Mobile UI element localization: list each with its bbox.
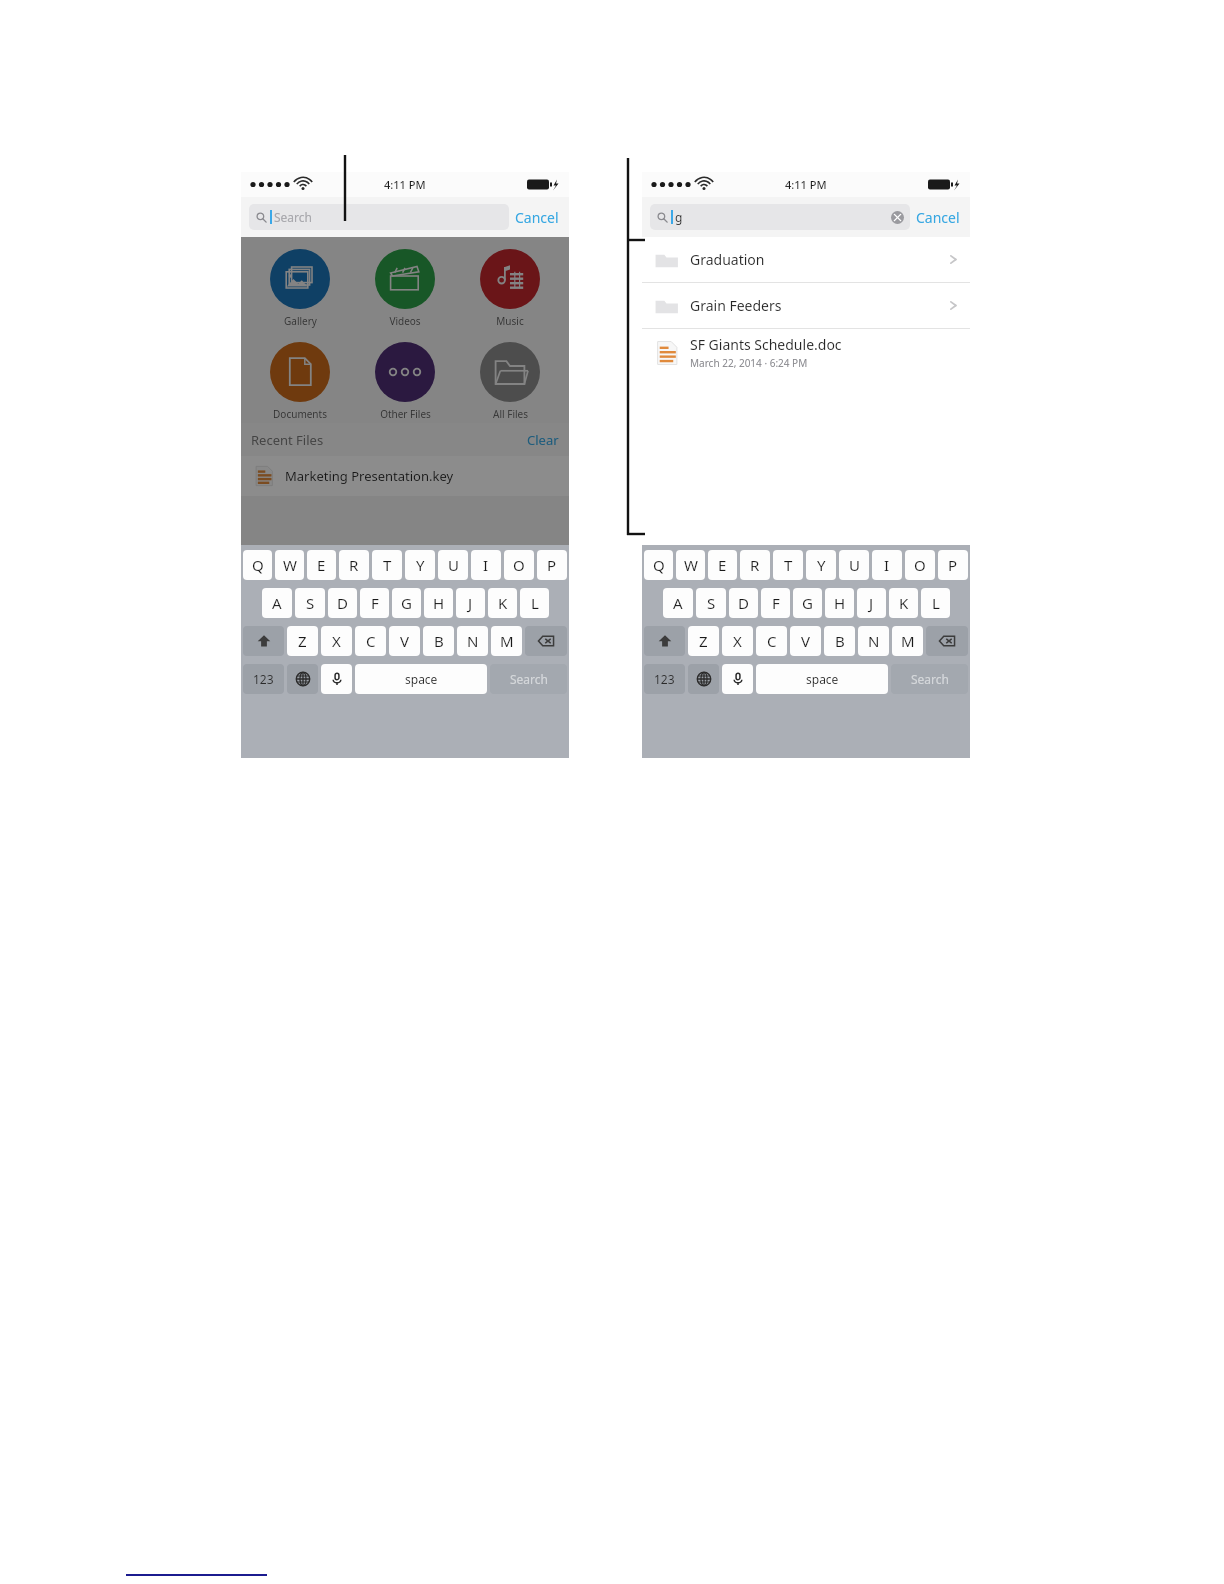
staticText: A (673, 593, 683, 613)
button[interactable]: Graduation (642, 237, 970, 282)
staticText: 123 (253, 671, 274, 687)
button[interactable]: All Files (464, 340, 556, 423)
button[interactable]: V (389, 626, 420, 656)
button[interactable]: Other Files (359, 340, 451, 423)
staticText: Gallery (284, 314, 317, 328)
button[interactable]: B (824, 626, 855, 656)
button[interactable]: K (889, 588, 918, 618)
button[interactable]: J (456, 588, 485, 618)
button[interactable]: SF Giants Schedule.doc (642, 329, 970, 376)
staticText: O (914, 555, 926, 575)
button[interactable]: Q (243, 550, 272, 580)
button[interactable]: Y (405, 550, 435, 580)
staticText: F (371, 593, 379, 613)
button[interactable]: Y (806, 550, 836, 580)
staticText: Grain Feeders (690, 296, 782, 315)
button[interactable]: Documents (254, 340, 346, 423)
button[interactable]: Z (688, 626, 719, 656)
button[interactable]: W (275, 550, 304, 580)
button[interactable]: Z (287, 626, 318, 656)
button[interactable]: 123 (243, 664, 284, 694)
button[interactable]: O (504, 550, 534, 580)
button[interactable]: S (295, 588, 325, 618)
button[interactable]: R (740, 550, 770, 580)
button[interactable]: W (676, 550, 705, 580)
button[interactable]: Search (249, 204, 509, 230)
button[interactable]: Search (891, 664, 968, 694)
staticText: J (869, 593, 874, 613)
button[interactable]: D (328, 588, 357, 618)
button[interactable]: G (793, 588, 822, 618)
button[interactable]: 123 (644, 664, 685, 694)
button[interactable]: Videos (359, 247, 451, 330)
staticText: Documents (273, 407, 327, 421)
button[interactable]: Q (644, 550, 673, 580)
button[interactable]: F (360, 588, 389, 618)
button[interactable]: T (372, 550, 402, 580)
button[interactable]: space (756, 664, 888, 694)
staticText: space (806, 671, 839, 687)
button[interactable]: I (471, 550, 501, 580)
button[interactable]: Music (464, 247, 556, 330)
button[interactable]: V (790, 626, 821, 656)
button[interactable]: X (722, 626, 753, 656)
button[interactable]: Shift (644, 626, 685, 656)
button[interactable]: S (696, 588, 726, 618)
button[interactable]: space (355, 664, 487, 694)
button[interactable]: Change keyboard (688, 664, 719, 694)
staticText: K (498, 593, 508, 613)
button[interactable]: H (424, 588, 453, 618)
button[interactable]: g (650, 204, 910, 230)
button[interactable]: U (839, 550, 869, 580)
button[interactable]: Cancel (515, 208, 559, 227)
button[interactable]: C (355, 626, 386, 656)
button[interactable]: G (392, 588, 421, 618)
button[interactable]: L (520, 588, 549, 618)
button[interactable]: C (756, 626, 787, 656)
button[interactable]: X (321, 626, 352, 656)
staticText: K (899, 593, 909, 613)
button[interactable]: I (872, 550, 902, 580)
staticText: Graduation (690, 250, 765, 269)
button[interactable]: M (491, 626, 522, 656)
button[interactable]: A (262, 588, 292, 618)
button[interactable]: J (857, 588, 886, 618)
button[interactable]: K (488, 588, 517, 618)
button[interactable]: O (905, 550, 935, 580)
button[interactable]: Marketing Presentation.key (241, 456, 569, 496)
button[interactable]: N (858, 626, 889, 656)
button[interactable]: T (773, 550, 803, 580)
staticText: P (547, 555, 557, 575)
button[interactable]: Shift (243, 626, 284, 656)
button[interactable]: Clear (527, 431, 559, 449)
button[interactable]: Change keyboard (287, 664, 318, 694)
button[interactable]: Grain Feeders (642, 283, 970, 328)
button[interactable]: M (892, 626, 923, 656)
button[interactable]: Dictate (722, 664, 753, 694)
button[interactable]: F (761, 588, 790, 618)
button[interactable]: A (663, 588, 693, 618)
button[interactable]: Dictate (321, 664, 352, 694)
button[interactable]: Search (490, 664, 567, 694)
staticText: R (349, 555, 359, 575)
staticText: U (448, 555, 459, 575)
button[interactable]: U (438, 550, 468, 580)
button[interactable]: N (457, 626, 488, 656)
button[interactable]: R (339, 550, 369, 580)
staticText: SF Giants Schedule.doc (690, 335, 842, 354)
button[interactable]: P (938, 550, 968, 580)
button[interactable]: P (537, 550, 567, 580)
button[interactable]: Cancel (916, 208, 960, 227)
staticText: E (317, 555, 326, 575)
button[interactable]: L (921, 588, 950, 618)
button[interactable]: Backspace (926, 626, 968, 656)
button[interactable]: B (423, 626, 454, 656)
staticText: W (684, 555, 698, 575)
button[interactable]: E (307, 550, 336, 580)
button[interactable]: D (729, 588, 758, 618)
button[interactable]: H (825, 588, 854, 618)
button[interactable]: E (708, 550, 737, 580)
staticText: g (675, 209, 683, 225)
button[interactable]: Backspace (525, 626, 567, 656)
button[interactable]: Gallery (254, 247, 346, 330)
